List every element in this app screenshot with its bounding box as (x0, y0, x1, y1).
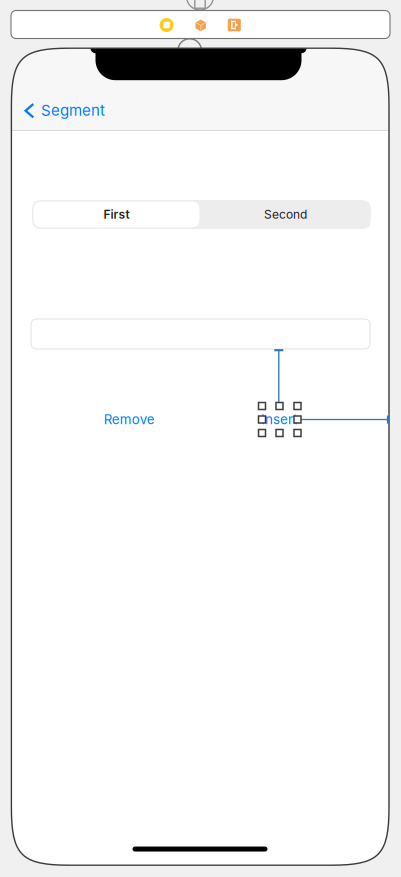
staticText: First (103, 207, 129, 222)
button[interactable]: Insert (255, 407, 303, 431)
staticText: Segment (41, 101, 105, 119)
button[interactable]: Exit (227, 18, 241, 32)
button[interactable]: Segment (20, 94, 110, 127)
button[interactable]: First Responder (194, 18, 208, 32)
button[interactable]: View Controller (160, 18, 174, 32)
button[interactable]: Remove (98, 407, 161, 431)
staticText: Insert (261, 411, 297, 427)
staticText: Remove (104, 411, 155, 427)
staticText: Second (264, 207, 307, 222)
